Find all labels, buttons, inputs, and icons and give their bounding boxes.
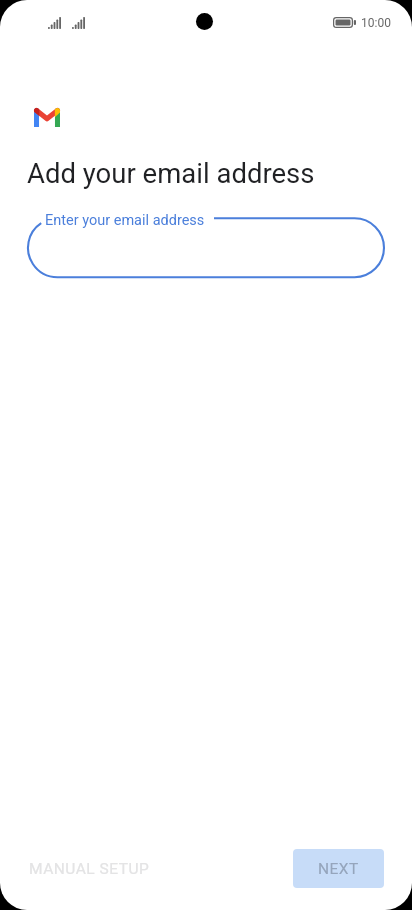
other: Gmail: [34, 108, 60, 127]
staticText: 10:00: [361, 16, 391, 30]
button[interactable]: MANUAL SETUP: [20, 849, 158, 888]
staticText: NEXT: [318, 860, 359, 878]
staticText: Add your email address: [27, 157, 315, 189]
staticText: Enter your email address: [45, 212, 205, 229]
staticText: MANUAL SETUP: [29, 860, 150, 878]
button[interactable]: NEXT: [293, 849, 384, 888]
button[interactable]: Enter your email address: [28, 218, 384, 277]
